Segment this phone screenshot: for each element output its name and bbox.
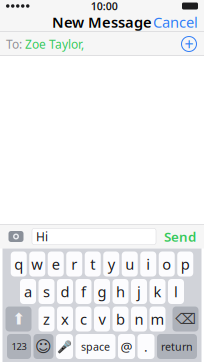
staticText: u (125, 254, 134, 274)
staticText: g (97, 282, 106, 301)
staticText: 123 (11, 340, 26, 353)
staticText: 10:00 (91, 0, 118, 13)
button[interactable]: s (38, 279, 54, 304)
staticText: To: (6, 36, 22, 52)
staticText: z (43, 309, 50, 329)
button[interactable]: . (137, 334, 154, 359)
button[interactable]: Add Contact (178, 33, 200, 55)
button[interactable]: e (48, 251, 64, 276)
button[interactable]: return (157, 334, 197, 359)
button[interactable]: p (177, 251, 193, 276)
button[interactable]: Dictate (56, 334, 73, 359)
staticText: v (98, 309, 105, 329)
staticText: return (161, 339, 193, 354)
button[interactable]: k (149, 279, 165, 304)
button[interactable]: z (38, 306, 54, 331)
button[interactable]: 123 (7, 334, 31, 359)
button[interactable]: n (131, 306, 147, 331)
button[interactable]: i (140, 251, 156, 276)
staticText: o (162, 254, 171, 274)
staticText: y (108, 254, 115, 274)
button[interactable]: u (122, 251, 138, 276)
staticText: h (116, 282, 125, 301)
button[interactable]: space (75, 334, 115, 359)
button[interactable]: a (20, 279, 36, 304)
staticText: Zoe Taylor, (25, 36, 84, 52)
staticText: Hi (36, 228, 48, 244)
staticText: + (184, 33, 193, 55)
button[interactable]: r (66, 251, 82, 276)
button[interactable]: Emoji (33, 334, 53, 359)
staticText: ⬆ (12, 310, 25, 328)
button[interactable]: c (75, 306, 91, 331)
button[interactable]: j (131, 279, 147, 304)
staticText: a (24, 282, 32, 301)
button[interactable]: y (103, 251, 119, 276)
staticText: n (134, 309, 143, 329)
button[interactable]: g (94, 279, 110, 304)
staticText: l (174, 282, 178, 301)
button[interactable]: @ (118, 334, 135, 359)
staticText: s (43, 282, 50, 301)
button[interactable]: x (57, 306, 73, 331)
button[interactable]: Cancel (147, 8, 204, 36)
staticText: w (31, 254, 43, 274)
staticText: x (61, 309, 69, 329)
staticText: ⌫ (175, 311, 196, 327)
button[interactable]: l (168, 279, 184, 304)
staticText: @ (120, 338, 132, 355)
button[interactable]: w (29, 251, 45, 276)
button[interactable]: h (112, 279, 128, 304)
staticText: Send (164, 228, 196, 245)
staticText: j (137, 282, 141, 301)
button[interactable]: Camera (6, 227, 26, 245)
button[interactable]: m (149, 306, 165, 331)
button[interactable]: Send (162, 225, 198, 248)
button[interactable]: q (11, 251, 27, 276)
button[interactable]: v (94, 306, 110, 331)
button[interactable]: t (85, 251, 101, 276)
staticText: . (144, 338, 148, 355)
button[interactable]: b (112, 306, 128, 331)
button[interactable]: Shift (5, 306, 31, 331)
staticText: 🎤 (57, 340, 72, 353)
staticText: b (116, 309, 125, 329)
staticText: space (81, 339, 110, 354)
button[interactable]: Delete (172, 306, 198, 331)
staticText: i (146, 254, 150, 274)
staticText: d (60, 282, 69, 301)
staticText: k (153, 282, 161, 301)
staticText: Cancel (153, 12, 198, 32)
button[interactable]: f (75, 279, 91, 304)
staticText: q (14, 254, 23, 274)
button[interactable]: To: (0, 32, 204, 56)
button[interactable]: d (57, 279, 73, 304)
staticText: r (71, 254, 77, 274)
staticText: ☺ (35, 337, 52, 356)
staticText: t (90, 254, 95, 274)
staticText: m (150, 309, 164, 329)
staticText: p (181, 254, 190, 274)
staticText: f (81, 282, 86, 301)
staticText: e (52, 254, 60, 274)
staticText: New Message (52, 12, 152, 32)
staticText: c (80, 309, 87, 329)
button[interactable]: o (159, 251, 175, 276)
